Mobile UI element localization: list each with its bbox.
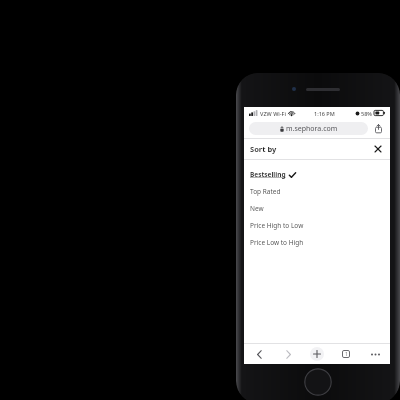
- button[interactable]: Price Low to High: [244, 234, 390, 251]
- staticText: m.sephora.com: [286, 124, 338, 134]
- button[interactable]: Back: [252, 347, 266, 361]
- staticText: Top Rated: [250, 187, 281, 196]
- staticText: Bestselling: [250, 170, 286, 179]
- staticText: New: [250, 204, 264, 213]
- button[interactable]: Close: [372, 143, 384, 155]
- staticText: Price Low to High: [250, 238, 304, 247]
- button[interactable]: Share: [372, 122, 385, 135]
- staticText: Sort by: [250, 144, 277, 154]
- button[interactable]: New: [244, 200, 390, 217]
- staticText: 58%: [361, 110, 372, 117]
- button[interactable]: Top Rated: [244, 183, 390, 200]
- button[interactable]: Forward: [281, 347, 295, 361]
- button[interactable]: Price High to Low: [244, 217, 390, 234]
- button[interactable]: m.sephora.com: [249, 122, 368, 135]
- staticText: 1: [345, 351, 348, 358]
- staticText: VZW Wi-Fi: [260, 110, 286, 117]
- staticText: 1:16 PM: [314, 110, 335, 117]
- button[interactable]: Add bookmark: [310, 347, 324, 361]
- button[interactable]: More: [368, 347, 382, 361]
- staticText: Price High to Low: [250, 221, 304, 230]
- button[interactable]: Tabs: [339, 347, 353, 361]
- button[interactable]: Bestselling: [244, 166, 390, 183]
